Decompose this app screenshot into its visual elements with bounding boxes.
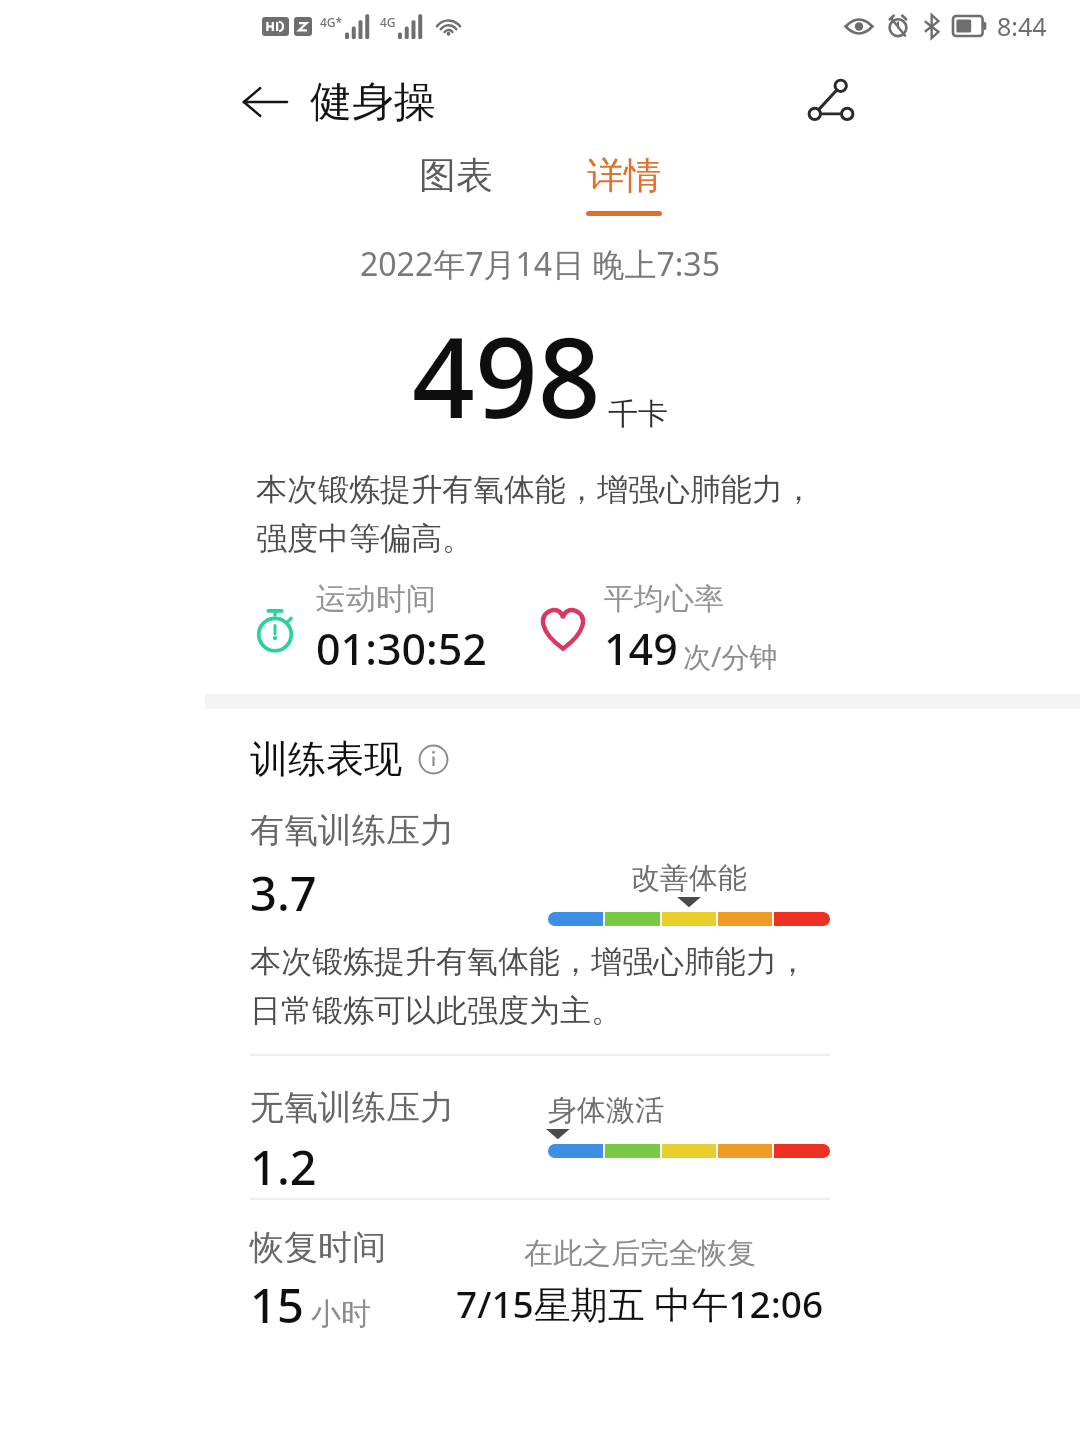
staticText: 7/15星期五 中午12:06	[456, 1278, 824, 1329]
button[interactable]: Back	[226, 63, 304, 141]
staticText: 本次锻炼提升有氧体能，增强心肺能力，强度中等偏高。	[256, 470, 834, 558]
button[interactable]: 详情	[540, 152, 708, 216]
staticText: 千卡	[608, 395, 668, 433]
button[interactable]: Info	[412, 738, 454, 780]
staticText: 01:30:52	[316, 619, 487, 678]
staticText: 4G*	[320, 14, 343, 30]
staticText: 健身操	[310, 76, 436, 129]
staticText: 运动时间	[316, 580, 436, 618]
staticText: 训练表现	[250, 735, 402, 783]
staticText: 次/分钟	[683, 637, 778, 675]
staticText: 149	[604, 619, 678, 678]
staticText: 2022年7月14日 晚上7:35	[360, 242, 720, 286]
staticText: 图表	[419, 152, 493, 199]
staticText: 本次锻炼提升有氧体能，增强心肺能力，日常锻炼可以此强度为主。	[250, 942, 830, 1030]
button[interactable]: 平均心率	[534, 580, 822, 678]
staticText: 小时	[311, 1295, 371, 1333]
staticText: 有氧训练压力	[250, 809, 454, 852]
staticText: 15	[250, 1273, 304, 1337]
staticText: 1.2	[250, 1135, 317, 1198]
staticText: 498	[412, 300, 601, 450]
staticText: 无氧训练压力	[250, 1086, 454, 1129]
button[interactable]: 运动时间	[246, 580, 534, 678]
staticText: 8:44	[997, 9, 1047, 43]
staticText: 在此之后完全恢复	[524, 1235, 756, 1272]
staticText: 身体激活	[548, 1092, 664, 1129]
button[interactable]: 图表	[372, 152, 540, 199]
staticText: 4G	[380, 14, 396, 30]
button[interactable]: Share	[792, 63, 870, 141]
staticText: 改善体能	[631, 860, 747, 897]
staticText: 平均心率	[604, 580, 724, 618]
staticText: 3.7	[250, 861, 317, 925]
staticText: 详情	[587, 152, 661, 199]
staticText: 恢复时间	[250, 1226, 386, 1269]
